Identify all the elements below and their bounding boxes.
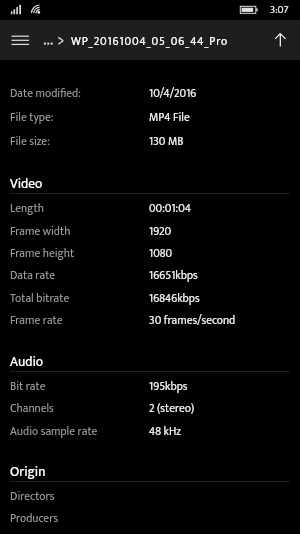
staticText: File type: (10, 108, 54, 127)
staticText: Frame rate (10, 311, 63, 330)
staticText: 3:07 (270, 1, 289, 18)
button[interactable] (0, 262, 300, 284)
staticText: Video (10, 173, 43, 195)
staticText: Audio (10, 351, 44, 373)
staticText: Origin (10, 461, 46, 483)
staticText: 1080 (149, 244, 173, 263)
staticText: 48 kHz (149, 422, 182, 441)
staticText: 10/4/2016 (149, 84, 197, 103)
staticText: 16846kbps (149, 289, 200, 308)
button[interactable] (0, 104, 300, 126)
staticText: 130 MB (149, 132, 184, 151)
button[interactable] (0, 373, 300, 395)
staticText: Audio sample rate (10, 422, 98, 441)
staticText: Directors (10, 487, 55, 506)
button[interactable] (0, 285, 300, 307)
staticText: 16651kbps (149, 266, 198, 285)
staticText: Frame width (10, 222, 71, 241)
button[interactable]: Up one level (262, 20, 300, 60)
staticText: Channels (10, 399, 54, 418)
staticText: 195kbps (149, 377, 188, 396)
staticText: 30 frames/second (149, 311, 236, 330)
staticText: 00:01:04 (149, 199, 191, 218)
staticText: Producers (10, 509, 59, 528)
staticText: 2 (stereo) (149, 399, 195, 418)
button[interactable]: Menu (2, 20, 40, 60)
button[interactable] (0, 195, 300, 217)
staticText: Bit rate (10, 377, 46, 396)
button[interactable] (0, 395, 300, 417)
button[interactable] (0, 418, 300, 440)
staticText: Total bitrate (10, 289, 70, 308)
staticText: Date modified: (10, 84, 81, 103)
button[interactable] (0, 307, 300, 329)
button[interactable] (0, 128, 300, 150)
button[interactable] (0, 240, 300, 262)
staticText: WP_20161004_05_06_44_Pro (71, 32, 229, 51)
staticText: 1920 (149, 222, 172, 241)
staticText: Data rate (10, 266, 56, 285)
staticText: Frame height (10, 244, 75, 263)
button[interactable] (0, 505, 300, 527)
staticText: Length (10, 199, 44, 218)
staticText: MP4 File (149, 108, 190, 127)
staticText: File size: (10, 132, 50, 151)
button[interactable] (0, 80, 300, 102)
button[interactable]: WP_20161004_05_06_44_Pro (41, 20, 233, 60)
button[interactable] (0, 483, 300, 505)
button[interactable] (0, 218, 300, 240)
